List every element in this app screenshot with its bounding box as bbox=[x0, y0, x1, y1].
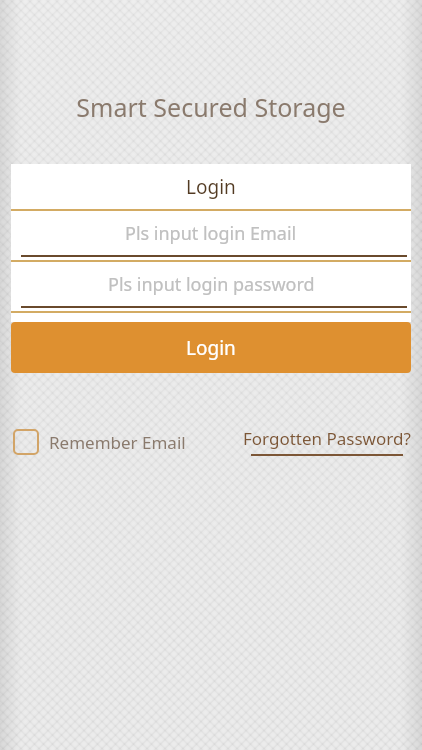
staticText: Login bbox=[186, 335, 236, 361]
staticText: Remember Email bbox=[49, 431, 186, 454]
other: Remember Email checkbox bbox=[13, 429, 39, 455]
button[interactable]: Pls input login Email bbox=[11, 211, 411, 255]
button[interactable]: Forgotten Password? bbox=[243, 427, 411, 456]
staticText: Login bbox=[186, 174, 236, 200]
button[interactable]: Remember Email checkbox bbox=[13, 429, 186, 455]
staticText: Pls input login Email bbox=[125, 221, 297, 246]
staticText: Pls input login password bbox=[108, 272, 315, 297]
button[interactable]: Pls input login password bbox=[11, 262, 411, 306]
staticText: Smart Secured Storage bbox=[0, 90, 422, 124]
button[interactable]: Login bbox=[11, 322, 411, 373]
staticText: Forgotten Password? bbox=[243, 427, 411, 450]
button[interactable]: Login bbox=[11, 164, 411, 209]
